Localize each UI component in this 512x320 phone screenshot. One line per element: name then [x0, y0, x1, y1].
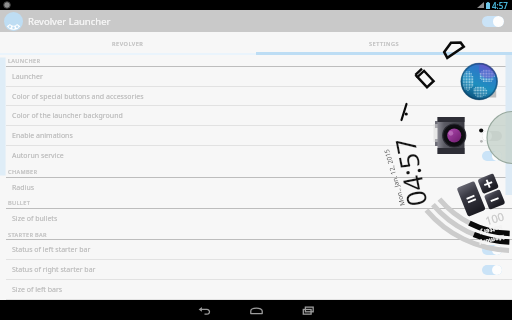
button[interactable]: Radius — [0, 178, 512, 198]
staticText: Size of bullets — [12, 214, 502, 224]
button[interactable]: Launcher — [0, 67, 512, 87]
staticText: STARTER BAR — [8, 231, 47, 239]
staticText: BULLET — [8, 199, 31, 207]
staticText: Radius — [12, 183, 502, 193]
button[interactable]: Back — [181, 300, 227, 320]
staticText: Enable animations — [12, 131, 482, 141]
staticText: 04:57 — [386, 134, 432, 210]
button[interactable]: Enable animations — [0, 126, 512, 146]
staticText: Launcher — [12, 72, 502, 82]
staticText: Revolver Launcher — [28, 15, 111, 28]
button[interactable]: Size of left bars — [0, 280, 512, 300]
staticText: 4:57 — [492, 0, 508, 10]
staticText: Status of left starter bar — [12, 245, 482, 255]
staticText: Mon., Jan. 12, 2015 — [382, 148, 407, 207]
staticText: 100 — [483, 208, 506, 228]
button[interactable]: Recent apps — [285, 300, 331, 320]
staticText: Size of left bars — [12, 285, 502, 295]
button[interactable]: Home — [233, 300, 279, 320]
staticText: Color of the launcher background — [12, 111, 502, 121]
button[interactable]: Status of right starter bar — [0, 260, 512, 280]
staticText: Memory — [478, 234, 506, 248]
staticText: LAUNCHER — [8, 57, 41, 65]
staticText: SETTINGS — [369, 40, 400, 48]
button[interactable]: Size of bullets — [0, 209, 512, 229]
button[interactable]: Color of special buttons and accessories — [0, 87, 512, 107]
button[interactable]: REVOLVER — [0, 32, 256, 55]
button[interactable]: Autorun service — [0, 146, 512, 166]
staticText: Status of right starter bar — [12, 265, 482, 275]
staticText: Color of special buttons and accessories — [12, 92, 502, 102]
staticText: Autorun service — [12, 151, 482, 161]
staticText: REVOLVER — [112, 40, 144, 48]
button[interactable]: Enable launcher — [482, 16, 504, 27]
staticText: CHAMBER — [8, 168, 38, 176]
staticText: Battery — [478, 224, 504, 238]
button[interactable]: SETTINGS — [256, 32, 512, 55]
button[interactable]: Color of the launcher background — [0, 106, 512, 126]
button[interactable]: Status of left starter bar — [0, 240, 512, 260]
